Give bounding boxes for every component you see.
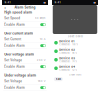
staticText: ‹ — [4, 5, 6, 10]
button[interactable]: Set Voltage — [2, 78, 48, 84]
button[interactable]: Device 02 — [52, 47, 98, 55]
staticText: Select device — [67, 35, 82, 38]
staticText: Show more — [69, 73, 81, 76]
staticText: 10 A — [40, 37, 46, 41]
button[interactable]: Enable Alarm — [2, 63, 48, 70]
staticText: • • • — [71, 18, 79, 21]
staticText: Enable Alarm — [4, 44, 24, 47]
staticText: 9:41 — [54, 1, 60, 4]
button[interactable]: Enable Alarm — [2, 42, 48, 49]
staticText: Set Voltage — [4, 58, 22, 62]
button[interactable]: Set Voltage — [2, 57, 48, 63]
staticText: Device 03 — [59, 57, 75, 60]
button[interactable]: Set Speed — [2, 15, 48, 21]
button[interactable]: Device 03 — [52, 55, 98, 64]
staticText: Over voltage alarm — [4, 53, 34, 56]
staticText: Alarm Setting — [14, 6, 35, 9]
staticText: ▮▮ — [94, 1, 96, 4]
button[interactable]: Set Current — [2, 36, 48, 42]
staticText: Back — [56, 78, 61, 81]
staticText: Over current alarm — [4, 32, 33, 35]
staticText: High speed alarm — [4, 11, 32, 14]
button[interactable]: Enable Alarm — [2, 21, 48, 28]
staticText: Connected · 86 % — [59, 52, 77, 54]
button[interactable]: Device 04 — [52, 64, 98, 72]
staticText: Enable Alarm — [4, 65, 24, 68]
button[interactable]: Back — [54, 77, 63, 81]
staticText: ▮▮ — [44, 1, 46, 4]
staticText: 180 V — [38, 79, 46, 83]
staticText: Connected · 52 % — [59, 69, 77, 71]
staticText: Set Speed — [4, 16, 20, 20]
staticText: Device 01 — [59, 40, 74, 43]
button[interactable]: Enable Alarm — [2, 84, 48, 91]
staticText: Device 02 — [59, 48, 75, 51]
staticText: Set Voltage — [4, 79, 22, 83]
staticText: 9:41 — [4, 1, 10, 4]
staticText: Enable Alarm — [4, 86, 24, 89]
staticText: Enable Alarm — [4, 23, 24, 26]
staticText: Connected · 74 % — [59, 60, 77, 63]
staticText: Device 04 — [59, 65, 75, 68]
staticText: Set Current — [4, 37, 21, 41]
button[interactable]: Device 01 — [52, 38, 98, 47]
staticText: 30 km/h — [35, 16, 46, 20]
button[interactable]: Back — [4, 5, 7, 10]
staticText: Under voltage alarm — [4, 74, 36, 77]
staticText: Connected · 100 % — [59, 43, 78, 46]
staticText: 240 V — [37, 58, 46, 62]
